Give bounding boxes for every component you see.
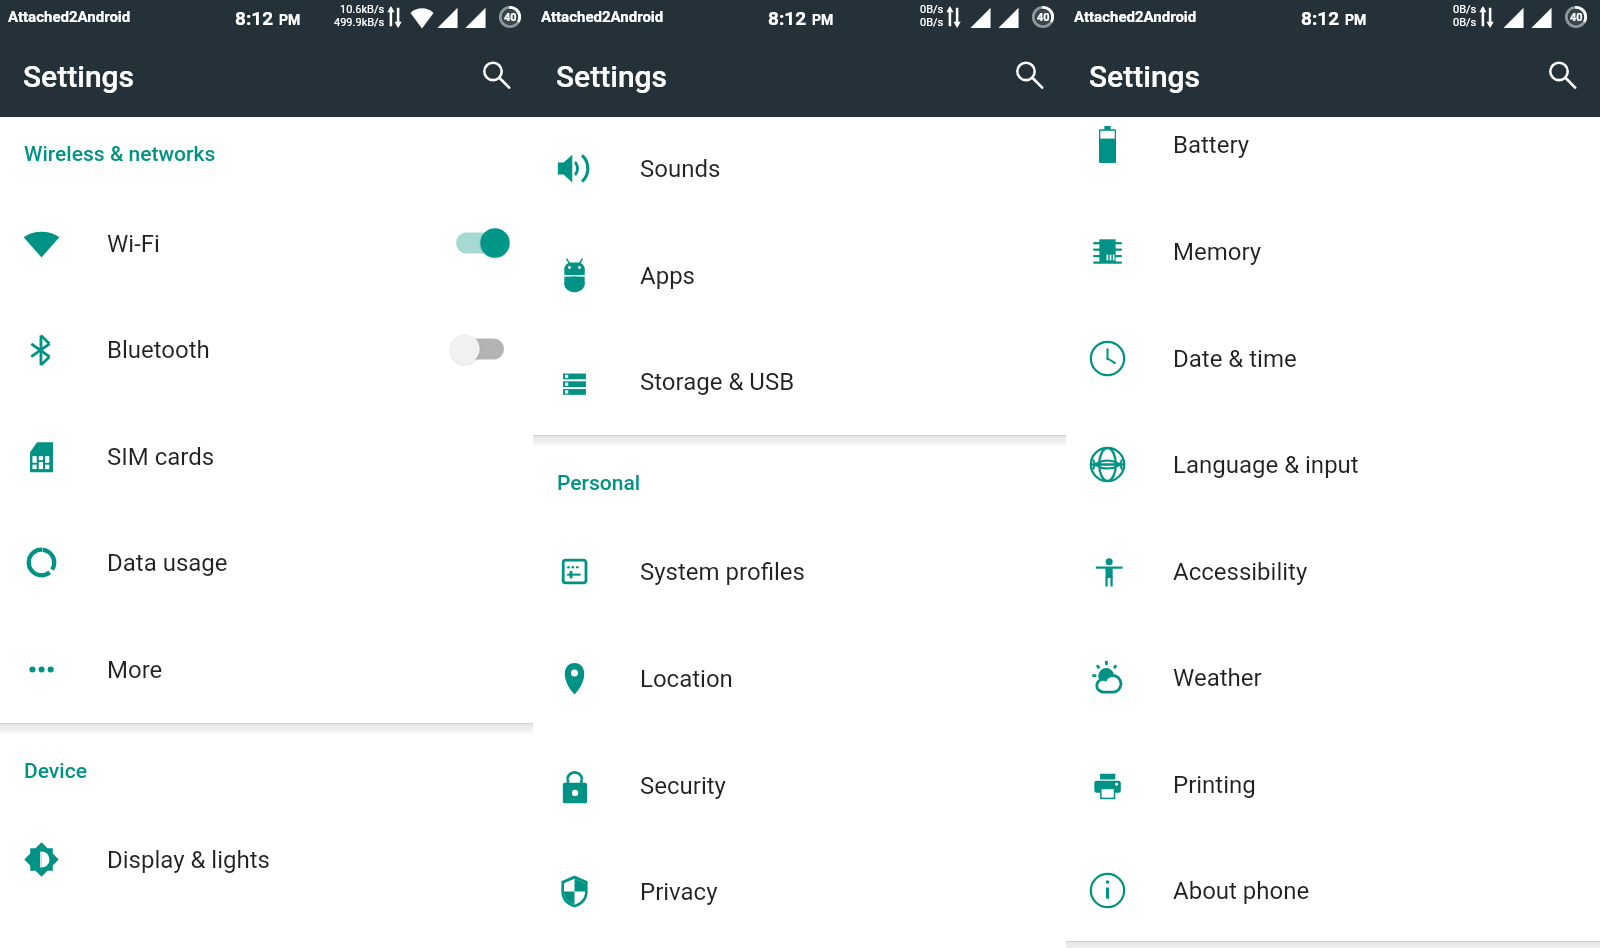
button[interactable]: System profiles <box>533 518 1066 625</box>
staticText: Battery <box>1173 131 1250 159</box>
staticText: Settings <box>23 59 135 94</box>
button[interactable]: Search <box>472 51 520 99</box>
staticText: Printing <box>1173 771 1256 799</box>
staticText: Personal <box>557 471 641 496</box>
staticText: 40 <box>1037 11 1050 24</box>
staticText: Attached2Android <box>541 8 664 26</box>
button[interactable]: Date & time <box>1066 305 1600 412</box>
staticText: Memory <box>1173 238 1262 266</box>
button[interactable]: About phone <box>1066 837 1600 944</box>
button[interactable]: Location <box>533 625 1066 732</box>
staticText: Attached2Android <box>8 8 131 26</box>
staticText: Wi-Fi <box>107 230 160 258</box>
staticText: Data usage <box>107 549 228 577</box>
staticText: Settings <box>1089 59 1201 94</box>
button[interactable]: Storage & USB <box>533 328 1066 435</box>
staticText: Security <box>640 772 726 800</box>
button[interactable]: Accessibility <box>1066 518 1600 625</box>
staticText: Weather <box>1173 664 1262 692</box>
staticText: 0B/s <box>1453 3 1477 16</box>
staticText: Display & lights <box>107 846 270 874</box>
staticText: 8:12 <box>1301 7 1340 29</box>
button[interactable]: Apps <box>533 222 1066 329</box>
staticText: PM <box>279 12 301 28</box>
button[interactable]: Memory <box>1066 198 1600 305</box>
staticText: SIM cards <box>107 443 215 471</box>
button[interactable]: More <box>0 616 533 723</box>
button[interactable]: Privacy <box>533 838 1066 945</box>
staticText: Attached2Android <box>1074 8 1197 26</box>
staticText: 0B/s <box>1453 16 1477 29</box>
staticText: Bluetooth <box>107 336 210 364</box>
staticText: 0B/s <box>920 3 944 16</box>
button[interactable]: Display & lights <box>0 806 533 913</box>
button[interactable]: Wireless & networks <box>0 132 533 176</box>
button[interactable]: SIM cards <box>0 403 533 510</box>
staticText: 8:12 <box>768 7 807 29</box>
button[interactable]: Device <box>0 749 533 793</box>
staticText: Privacy <box>640 878 718 906</box>
button[interactable]: Search <box>1005 51 1053 99</box>
staticText: 10.6kB/s <box>340 3 385 16</box>
staticText: System profiles <box>640 558 805 586</box>
button[interactable]: Battery <box>1066 91 1600 198</box>
staticText: 499.9kB/s <box>334 16 385 29</box>
button[interactable]: Bluetooth <box>0 296 533 403</box>
button[interactable]: Toggle Bluetooth <box>450 331 510 367</box>
staticText: Wireless & networks <box>24 142 216 167</box>
staticText: 40 <box>504 11 517 24</box>
staticText: Storage & USB <box>640 368 795 396</box>
staticText: 0B/s <box>920 16 944 29</box>
staticText: 40 <box>1570 11 1583 24</box>
button[interactable]: Language & input <box>1066 411 1600 518</box>
staticText: PM <box>812 12 834 28</box>
staticText: Location <box>640 665 733 693</box>
button[interactable]: Printing <box>1066 731 1600 838</box>
staticText: PM <box>1345 12 1367 28</box>
button[interactable]: Toggle Wi-Fi <box>450 225 510 261</box>
staticText: Date & time <box>1173 345 1297 373</box>
button[interactable]: Sounds <box>533 115 1066 222</box>
staticText: Accessibility <box>1173 558 1308 586</box>
button[interactable]: Security <box>533 732 1066 839</box>
staticText: Apps <box>640 262 695 290</box>
staticText: Settings <box>556 59 668 94</box>
button[interactable]: Data usage <box>0 509 533 616</box>
button[interactable]: Search <box>1538 51 1586 99</box>
staticText: 8:12 <box>235 7 274 29</box>
button[interactable]: Weather <box>1066 624 1600 731</box>
button[interactable]: Wi-Fi <box>0 190 533 297</box>
staticText: About phone <box>1173 877 1310 905</box>
staticText: Device <box>24 759 87 784</box>
staticText: Sounds <box>640 155 721 183</box>
staticText: More <box>107 656 163 684</box>
staticText: Language & input <box>1173 451 1359 479</box>
button[interactable]: Personal <box>533 461 1066 505</box>
